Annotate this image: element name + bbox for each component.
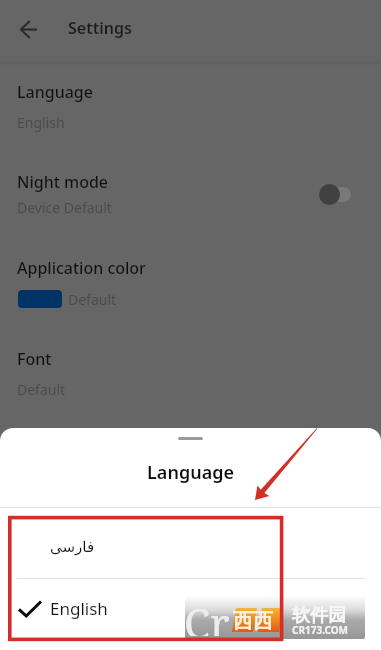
staticText: CR173.COM: [292, 623, 349, 637]
staticText: فارسی: [50, 538, 95, 555]
button[interactable]: [0, 338, 381, 408]
staticText: Default: [68, 290, 117, 309]
staticText: 西西: [233, 609, 273, 634]
button[interactable]: [0, 508, 381, 578]
staticText: 软件园: [292, 604, 346, 627]
staticText: Device Default: [17, 198, 112, 217]
staticText: Language: [0, 460, 381, 485]
staticText: Language: [17, 81, 93, 103]
button[interactable]: [0, 158, 381, 240]
button[interactable]: [0, 68, 381, 150]
staticText: Night mode: [17, 171, 109, 193]
staticText: Font: [17, 348, 52, 370]
staticText: English: [50, 597, 108, 620]
staticText: Cr: [185, 597, 230, 636]
staticText: Default: [17, 380, 66, 399]
button[interactable]: Back: [5, 6, 52, 53]
button[interactable]: Night mode switch: [313, 180, 357, 208]
button[interactable]: [0, 579, 381, 650]
staticText: Application color: [17, 257, 146, 279]
staticText: English: [17, 113, 65, 132]
button[interactable]: [0, 248, 381, 322]
staticText: Settings: [68, 17, 132, 39]
